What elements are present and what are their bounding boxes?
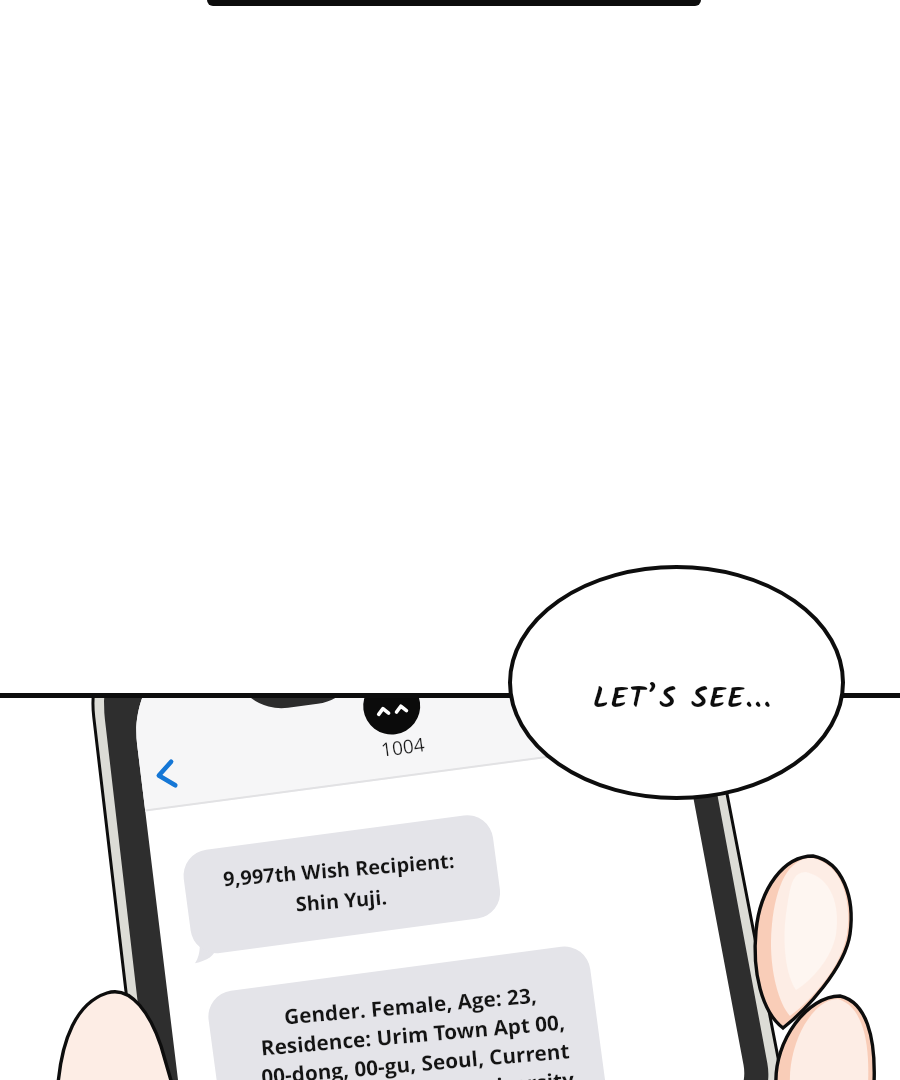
button[interactable]: Comic panel: [0, 0, 900, 1080]
